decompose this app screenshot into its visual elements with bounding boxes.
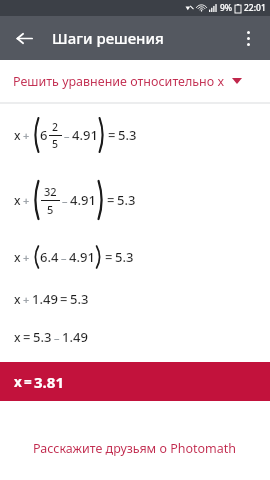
staticText: + xyxy=(23,250,30,265)
staticText: 3.81 xyxy=(34,372,64,392)
staticText: + xyxy=(23,193,30,208)
staticText: – xyxy=(64,128,70,143)
staticText: 5.3 xyxy=(70,290,89,308)
staticText: 1.49 xyxy=(62,328,88,346)
staticText: 32 xyxy=(44,184,57,199)
staticText: = xyxy=(24,373,32,391)
button[interactable]: Расскажите друзьям о Photomath xyxy=(21,432,249,465)
staticText: – xyxy=(62,193,68,208)
staticText: 6.4 xyxy=(40,248,59,266)
staticText: Расскажите друзьям о Photomath xyxy=(33,440,237,457)
button[interactable]: x xyxy=(0,234,270,280)
staticText: 4.91 xyxy=(69,248,95,266)
staticText: = xyxy=(23,328,31,346)
staticText: + xyxy=(23,292,30,307)
staticText: 5.3 xyxy=(117,191,136,209)
staticText: = xyxy=(108,126,116,144)
staticText: – xyxy=(61,250,67,265)
staticText: 5.3 xyxy=(115,248,134,266)
button[interactable]: x xyxy=(0,104,270,166)
staticText: Решить уравнение относительно x xyxy=(13,73,225,90)
staticText: 6 xyxy=(40,126,48,144)
button[interactable]: Решить уравнение относительно x xyxy=(0,60,270,102)
staticText: + xyxy=(23,128,30,143)
button[interactable]: x xyxy=(0,318,270,356)
staticText: 5 xyxy=(47,202,54,217)
staticText: 5.3 xyxy=(118,126,137,144)
staticText: 1.49 xyxy=(32,290,58,308)
staticText: 22:01 xyxy=(244,2,266,14)
staticText: 4.91 xyxy=(72,126,98,144)
button[interactable]: Back xyxy=(6,20,42,56)
staticText: x xyxy=(14,373,22,391)
button[interactable]: x xyxy=(0,280,270,318)
staticText: = xyxy=(60,290,68,308)
button[interactable]: x xyxy=(0,166,270,234)
button[interactable]: More options xyxy=(230,20,266,56)
staticText: x xyxy=(14,291,21,307)
staticText: 5.3 xyxy=(33,328,52,346)
staticText: 9% xyxy=(220,2,233,14)
staticText: x xyxy=(14,127,21,143)
staticText: x xyxy=(14,329,21,345)
staticText: – xyxy=(54,330,60,345)
staticText: = xyxy=(107,191,115,209)
staticText: = xyxy=(105,248,113,266)
staticText: x xyxy=(14,249,21,265)
button[interactable]: x xyxy=(0,362,270,401)
staticText: 2 xyxy=(52,120,59,134)
staticText: Шаги решения xyxy=(52,28,164,48)
staticText: 5 xyxy=(52,137,59,151)
staticText: x xyxy=(14,192,21,208)
staticText: 4.91 xyxy=(70,191,96,209)
